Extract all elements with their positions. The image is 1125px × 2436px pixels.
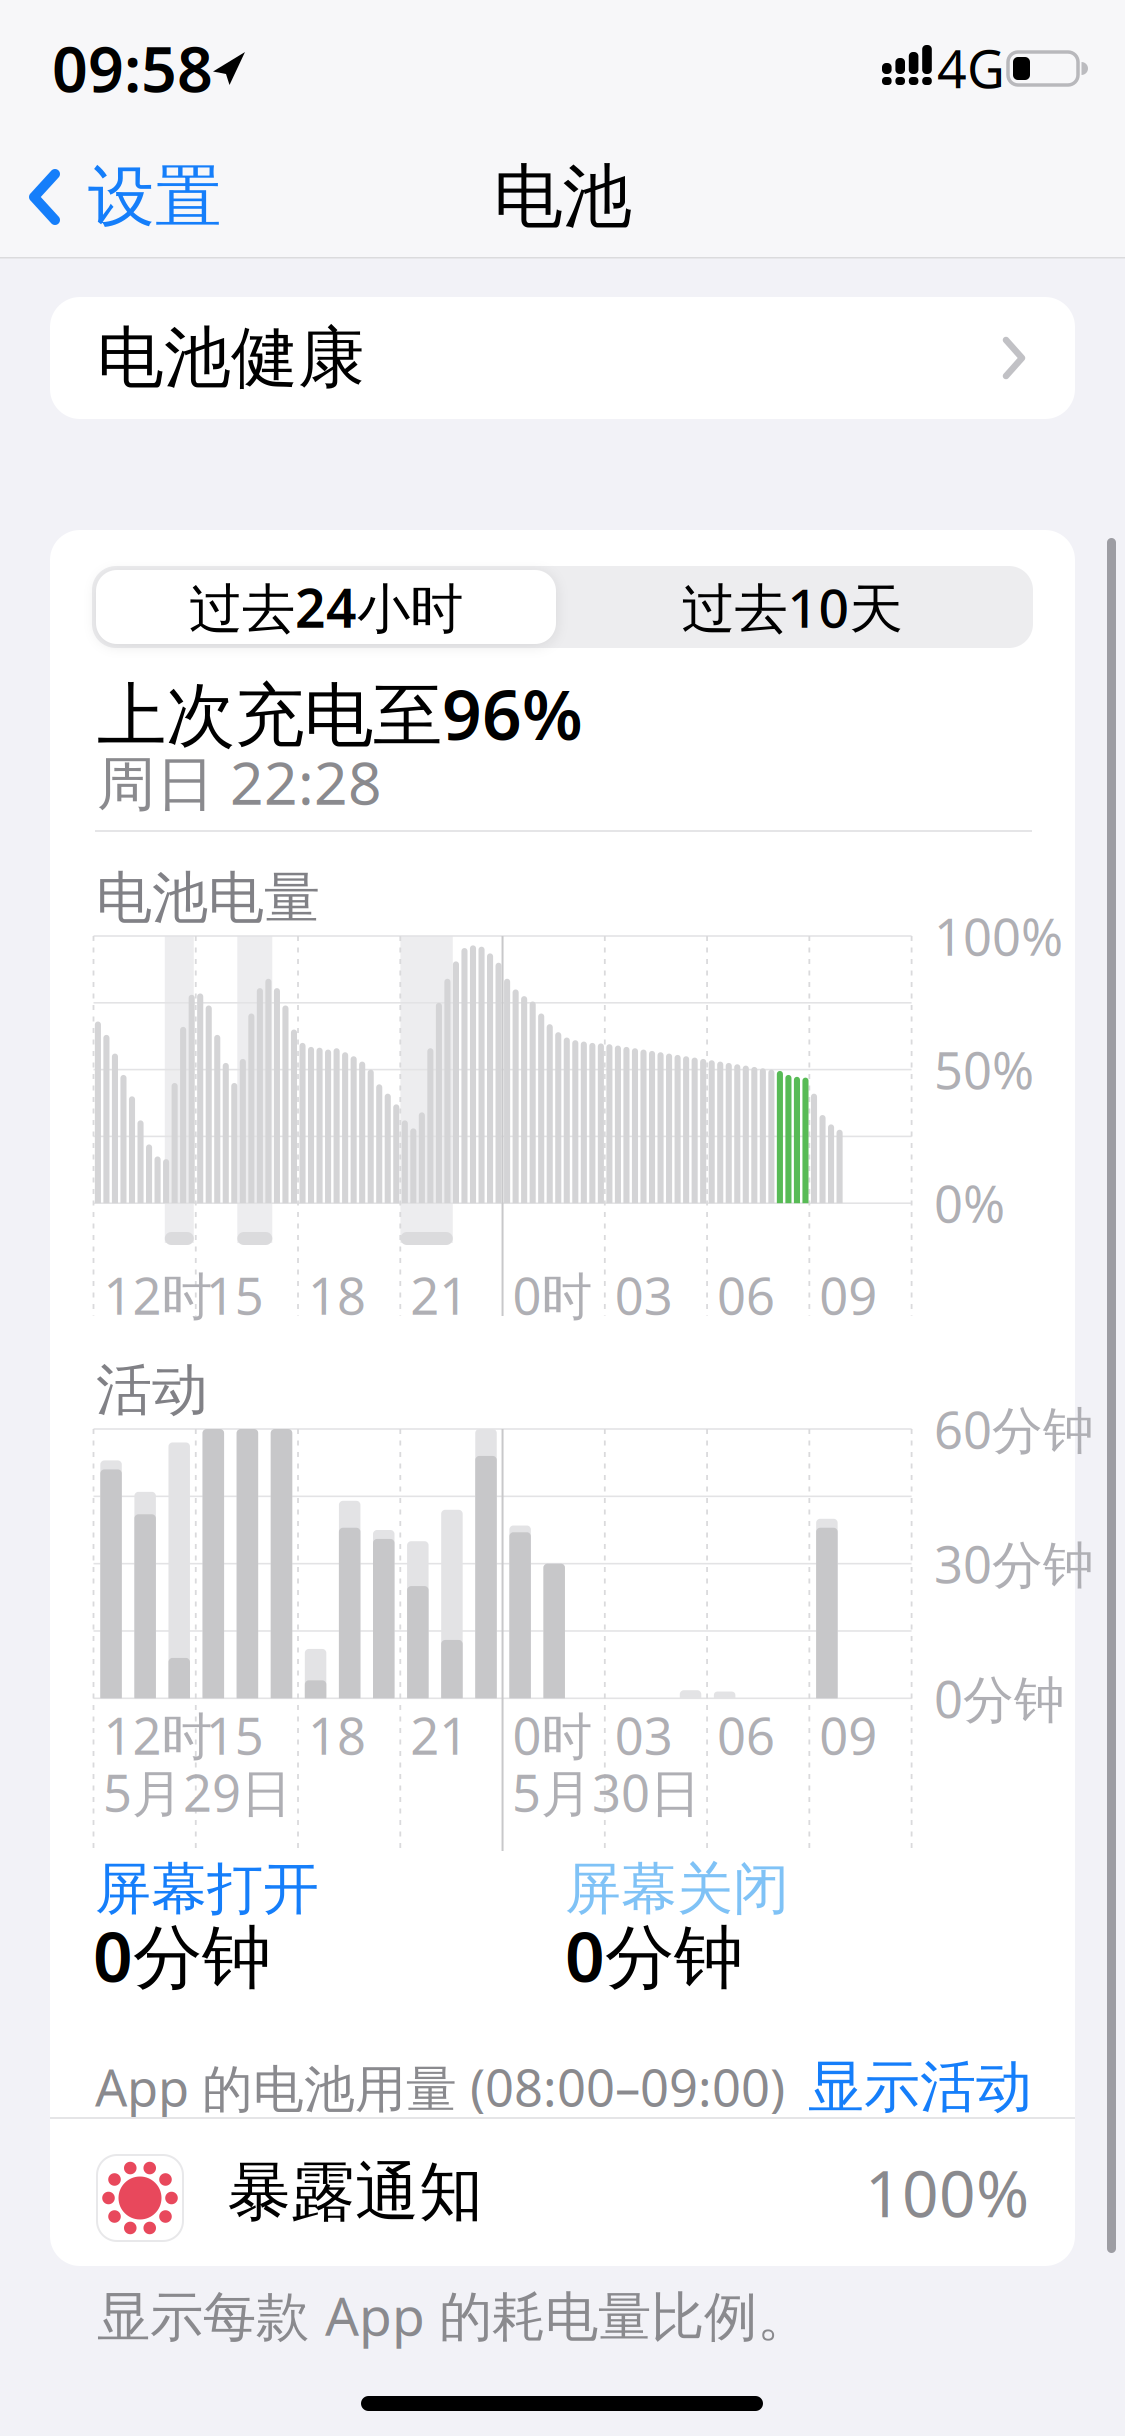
staticText: 显示活动 (808, 2053, 1032, 2121)
staticText: 电池健康 (97, 317, 365, 399)
staticText: 0分钟 (565, 1909, 743, 2001)
staticText: 18 (308, 1701, 366, 1769)
staticText: 4G (937, 33, 1005, 103)
staticText: 12时 (103, 1261, 212, 1329)
staticText: 5月30日 (512, 1758, 701, 1826)
staticText: 30分钟 (934, 1530, 1094, 1597)
staticText: 100% (934, 902, 1063, 970)
button[interactable]: 返回设置 (28, 167, 293, 227)
staticText: 50% (934, 1036, 1034, 1103)
staticText: 屏幕关闭 (565, 1855, 789, 1923)
staticText: 0分钟 (934, 1665, 1065, 1732)
staticText: 09:58 (52, 26, 213, 110)
staticText: 0时 (512, 1701, 592, 1769)
staticText: 活动 (96, 1356, 208, 1424)
staticText: 5月29日 (103, 1758, 292, 1826)
staticText: 暴露通知 (227, 2153, 483, 2232)
staticText: 03 (615, 1261, 673, 1329)
staticText: 0分钟 (93, 1909, 271, 2001)
staticText: 显示每款 App 的耗电量比例。 (97, 2280, 810, 2350)
staticText: 过去10天 (681, 572, 902, 642)
staticText: 09 (819, 1261, 877, 1329)
staticText: 设置 (88, 156, 222, 238)
staticText: 06 (717, 1701, 775, 1769)
staticText: 周日 22:28 (97, 743, 382, 821)
staticText: 100% (865, 2150, 1029, 2235)
staticText: 电池 (493, 154, 631, 240)
staticText: 18 (308, 1261, 366, 1329)
staticText: 0时 (512, 1261, 592, 1329)
staticText: 过去24小时 (189, 572, 463, 642)
staticText: 15 (206, 1701, 264, 1769)
staticText: 12时 (103, 1701, 212, 1769)
staticText: 上次充电至96% (97, 667, 583, 759)
button[interactable]: 显示活动 (732, 2057, 1032, 2117)
staticText: 0% (934, 1170, 1005, 1237)
staticText: 15 (206, 1261, 264, 1329)
button[interactable]: 电池健康 (50, 297, 1075, 419)
button[interactable]: 过去10天 (562, 570, 1022, 644)
staticText: 21 (410, 1261, 468, 1329)
staticText: App 的电池用量 (08:00–09:00) (95, 2053, 785, 2121)
staticText: 屏幕打开 (95, 1855, 319, 1923)
staticText: 03 (615, 1701, 673, 1769)
staticText: 电池电量 (96, 864, 320, 932)
staticText: 60分钟 (934, 1395, 1094, 1463)
staticText: 06 (717, 1261, 775, 1329)
button[interactable]: 过去24小时 (96, 570, 556, 644)
staticText: 09 (819, 1701, 877, 1769)
staticText: 21 (410, 1701, 468, 1769)
button[interactable]: 暴露通知 (50, 2119, 1075, 2266)
